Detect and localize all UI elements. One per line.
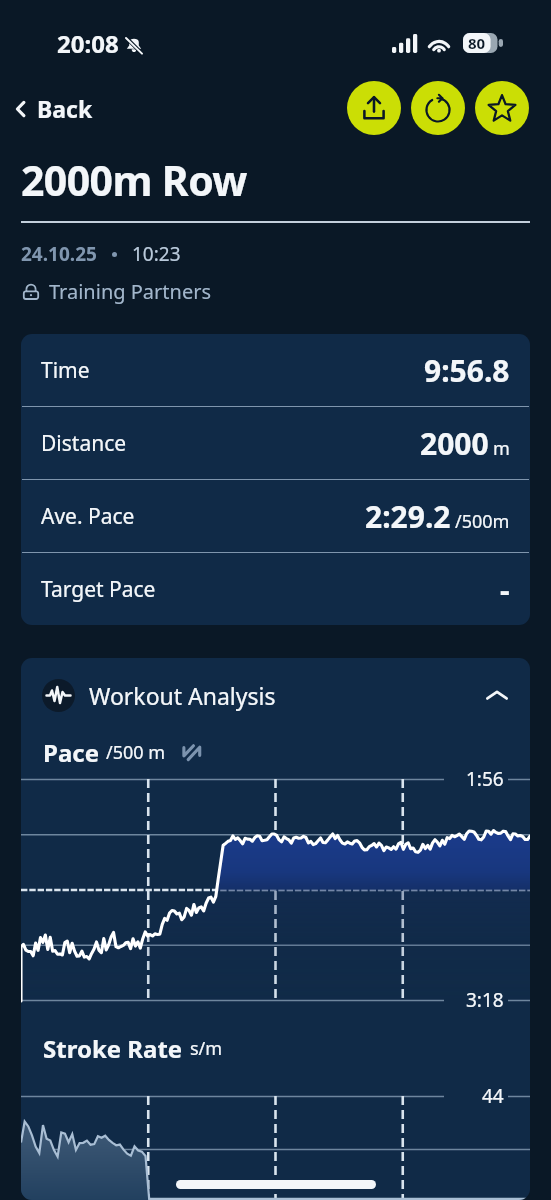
staticText: Time — [41, 356, 90, 385]
button[interactable]: Training Partners — [21, 278, 212, 305]
button[interactable]: Time — [21, 334, 530, 406]
staticText: Stroke Rate — [43, 1032, 183, 1065]
staticText: 2:29.2 — [365, 496, 451, 537]
button[interactable]: Back — [4, 85, 105, 132]
staticText: Pace — [43, 736, 99, 769]
staticText: m — [493, 436, 510, 461]
staticText: 20:08 — [57, 27, 119, 60]
staticText: 1:56 — [466, 766, 504, 792]
staticText: /500m — [455, 509, 510, 534]
staticText: 2000m Row — [21, 152, 247, 208]
button[interactable]: Share — [347, 81, 401, 135]
button[interactable]: Target Pace — [21, 553, 530, 625]
staticText: Distance — [41, 429, 127, 458]
staticText: 80 — [468, 33, 486, 53]
staticText: 3:18 — [466, 987, 504, 1013]
staticText: Ave. Pace — [41, 502, 135, 531]
staticText: Training Partners — [49, 278, 212, 305]
staticText: - — [500, 569, 510, 610]
staticText: Workout Analysis — [89, 680, 276, 711]
staticText: 24.10.25 — [21, 241, 97, 267]
other: Collapse — [485, 684, 509, 708]
staticText: Target Pace — [41, 575, 156, 604]
button[interactable]: Distance — [21, 407, 530, 479]
button[interactable]: Ave. Pace — [21, 480, 530, 552]
staticText: 2000 — [420, 423, 489, 464]
staticText: Back — [37, 93, 93, 124]
button[interactable]: Add to favourites — [475, 81, 529, 135]
staticText: 9:56.8 — [424, 350, 510, 391]
button[interactable]: Workout Analysis — [21, 658, 530, 733]
staticText: 44 — [482, 1083, 504, 1109]
staticText: 10:23 — [132, 241, 181, 267]
button[interactable]: Repeat workout — [411, 81, 465, 135]
staticText: /500 m — [106, 740, 166, 765]
staticText: s/m — [190, 1036, 223, 1061]
